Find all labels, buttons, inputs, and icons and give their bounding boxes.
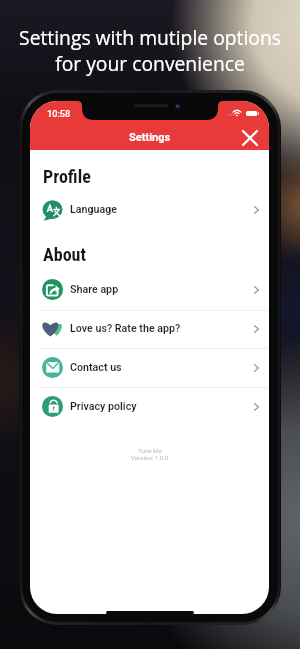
button[interactable]: Close <box>238 126 262 150</box>
staticText: for your convenience <box>55 50 245 76</box>
staticText: Share app <box>70 283 119 296</box>
staticText: 10:58 <box>47 108 71 119</box>
staticText: Love us? Rate the app? <box>70 322 181 335</box>
staticText: Settings with mutiple options <box>19 24 281 50</box>
button[interactable]: Love us? Rate the app? <box>30 309 269 348</box>
staticText: Language <box>70 203 118 216</box>
staticText: Profile <box>43 166 91 187</box>
staticText: Tune Me <box>138 447 162 454</box>
button[interactable]: Share app <box>30 270 269 309</box>
staticText: Privacy policy <box>70 400 137 413</box>
button[interactable]: Language <box>30 190 269 229</box>
staticText: About <box>43 244 86 265</box>
button[interactable]: Contact us <box>30 348 269 387</box>
staticText: Version: 1.0.0 <box>131 454 169 461</box>
staticText: Contact us <box>70 361 122 374</box>
button[interactable]: Privacy policy <box>30 387 269 426</box>
staticText: Settings <box>129 131 171 144</box>
